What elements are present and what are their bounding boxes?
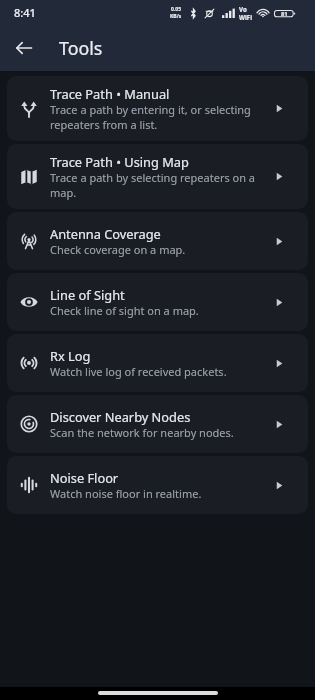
staticText: 81: [281, 10, 288, 18]
staticText: Watch live log of received packets.: [50, 364, 227, 379]
button[interactable]: Antenna Coverage: [7, 212, 308, 270]
staticText: WiFi: [239, 13, 253, 21]
button[interactable]: Back: [5, 29, 43, 67]
staticText: Watch noise floor in realtime.: [50, 486, 202, 501]
button[interactable]: Line of Sight: [7, 273, 308, 331]
staticText: Antenna Coverage: [50, 225, 161, 242]
staticText: Trace Path • Using Map: [50, 153, 189, 170]
staticText: Vo: [239, 5, 247, 13]
staticText: KB/s: [170, 13, 182, 20]
staticText: 0.05: [171, 6, 181, 13]
button[interactable]: Noise Floor: [7, 456, 308, 514]
staticText: Discover Nearby Nodes: [50, 408, 191, 425]
staticText: Tools: [59, 36, 103, 60]
staticText: Scan the network for nearby nodes.: [50, 425, 234, 440]
button[interactable]: Discover Nearby Nodes: [7, 395, 308, 453]
staticText: 8:41: [14, 5, 36, 20]
staticText: Rx Log: [50, 347, 91, 364]
staticText: Trace Path • Manual: [50, 85, 170, 102]
button[interactable]: Trace Path • Using Map: [7, 144, 308, 209]
button[interactable]: Rx Log: [7, 334, 308, 392]
staticText: Check coverage on a map.: [50, 242, 186, 257]
staticText: Line of Sight: [50, 286, 125, 303]
staticText: Trace a path by entering it, or selectin…: [50, 102, 265, 132]
staticText: Noise Floor: [50, 469, 119, 486]
button[interactable]: Trace Path • Manual: [7, 76, 308, 141]
staticText: Check line of sight on a map.: [50, 303, 199, 318]
staticText: Trace a path by selecting repeaters on a…: [50, 170, 265, 200]
